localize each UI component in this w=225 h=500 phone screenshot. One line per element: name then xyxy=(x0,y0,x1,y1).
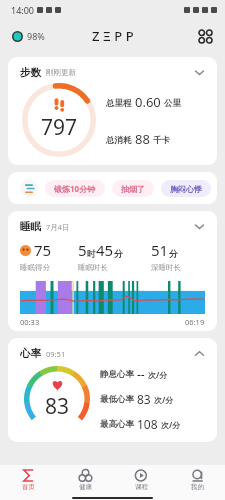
staticText: 总里程 xyxy=(106,98,132,109)
staticText: -- xyxy=(137,366,145,382)
staticText: 深睡时长 xyxy=(151,263,181,272)
staticText: 总消耗 xyxy=(106,135,132,146)
staticText: 心率 xyxy=(20,347,41,360)
button[interactable]: 抽烟了 xyxy=(112,180,154,197)
staticText: 次/分 xyxy=(148,369,168,380)
button[interactable]: 心率 xyxy=(8,338,217,442)
staticText: 锻炼10分钟 xyxy=(54,183,96,194)
button[interactable]: 健康 xyxy=(57,465,113,495)
staticText: 98% xyxy=(27,30,45,42)
button[interactable]: 步数 xyxy=(8,57,217,165)
staticText: 静息心率 xyxy=(100,369,134,380)
staticText: 14:00 xyxy=(11,4,35,16)
staticText: 次/分 xyxy=(161,419,181,430)
staticText: 45 xyxy=(96,240,114,260)
staticText: 83 xyxy=(137,391,151,407)
staticText: 睡眠 xyxy=(20,220,41,233)
button[interactable]: 睡眠 xyxy=(8,211,217,331)
staticText: 睡眠得分 xyxy=(20,263,50,272)
staticText: 09:51 xyxy=(46,349,66,359)
staticText: 千卡 xyxy=(153,135,170,146)
button[interactable]: Log xyxy=(8,172,217,204)
staticText: 分 xyxy=(114,248,123,259)
staticText: 最高心率 xyxy=(100,419,134,430)
staticText: 次/分 xyxy=(154,394,174,405)
staticText: 步数 xyxy=(20,66,41,79)
staticText: 5 xyxy=(78,240,87,260)
staticText: 0.60 xyxy=(135,93,161,111)
staticText: 胸闷心悸 xyxy=(170,184,202,194)
staticText: 抽烟了 xyxy=(121,184,145,194)
staticText: 健康 xyxy=(79,483,92,491)
staticText: 83 xyxy=(45,392,70,421)
button[interactable]: 课程 xyxy=(113,465,169,495)
button[interactable]: Log xyxy=(20,179,38,197)
button[interactable]: 98% xyxy=(10,28,47,44)
staticText: 75 xyxy=(34,240,52,260)
staticText: 最低心率 xyxy=(100,394,134,405)
staticText: 公里 xyxy=(164,98,181,109)
staticText: 51 xyxy=(151,240,169,260)
staticText: 分 xyxy=(169,248,178,259)
staticText: 时 xyxy=(87,248,96,259)
staticText: 108 xyxy=(137,416,158,432)
staticText: Z Ξ P P xyxy=(92,27,134,45)
staticText: 我的 xyxy=(191,483,204,491)
staticText: 06:19 xyxy=(185,317,205,327)
staticText: 00:33 xyxy=(20,317,40,327)
button[interactable]: Apps xyxy=(196,27,215,46)
staticText: 首页 xyxy=(22,483,35,491)
staticText: 797 xyxy=(41,113,78,142)
button[interactable]: 胸闷心悸 xyxy=(161,180,211,197)
button[interactable]: 锻炼10分钟 xyxy=(45,180,105,197)
staticText: 睡眠时长 xyxy=(78,263,108,272)
button[interactable]: 首页 xyxy=(0,465,57,495)
button[interactable]: 我的 xyxy=(169,465,225,495)
staticText: 88 xyxy=(135,130,150,148)
staticText: 7月4日 xyxy=(46,222,70,232)
staticText: 刚刚更新 xyxy=(46,68,76,77)
staticText: 课程 xyxy=(135,483,148,491)
